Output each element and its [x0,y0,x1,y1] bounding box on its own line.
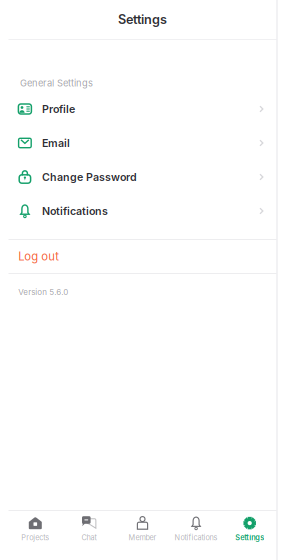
staticText: Chat [81,533,96,542]
button[interactable]: Notifications [169,511,223,560]
staticText: Projects [21,533,49,542]
staticText: Log out [18,250,59,263]
button[interactable]: Profile [8,92,276,126]
button[interactable]: Log out [8,240,276,273]
staticText: Notifications [42,204,108,217]
staticText: Profile [42,102,75,115]
button[interactable]: Chat [62,511,116,560]
staticText: Notifications [175,533,218,542]
staticText: Settings [235,533,264,542]
staticText: Change Password [42,170,137,183]
staticText: Version 5.6.0 [18,287,68,297]
button[interactable]: Settings [223,511,276,560]
staticText: Email [42,136,70,149]
staticText: Member [128,533,156,542]
button[interactable]: Notifications [8,194,276,228]
button[interactable]: Member [116,511,169,560]
button[interactable]: Projects [8,511,62,560]
button[interactable]: Email [8,126,276,160]
button[interactable]: Change Password [8,160,276,194]
staticText: General Settings [20,77,93,89]
staticText: Settings [118,12,167,27]
